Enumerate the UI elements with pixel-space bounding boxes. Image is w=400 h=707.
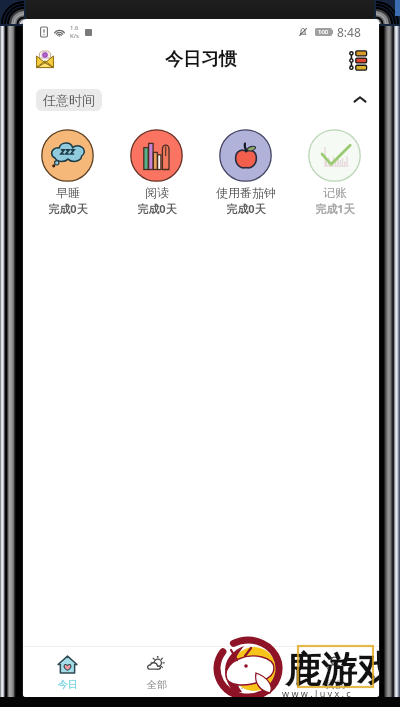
staticText: 番茄钟	[231, 678, 261, 691]
staticText: 今日	[58, 678, 78, 691]
staticText: 8:48	[337, 24, 361, 40]
button[interactable]: 使用番茄钟	[201, 129, 290, 216]
button[interactable]: 我的	[290, 647, 379, 697]
staticText: 100	[318, 28, 329, 36]
staticText: 完成1天	[315, 201, 355, 216]
staticText: 早睡	[56, 185, 80, 200]
staticText: 使用番茄钟	[216, 185, 276, 200]
staticText: 鹿游戏	[285, 647, 379, 692]
staticText: 1.6	[70, 24, 79, 32]
staticText: 完成0天	[226, 201, 266, 216]
staticText: 我的	[325, 678, 345, 691]
staticText: w w w . l u y x . c	[282, 687, 351, 697]
button[interactable]: Messages	[29, 44, 61, 76]
button[interactable]: 记账	[290, 129, 379, 216]
button[interactable]: 全部	[112, 647, 201, 697]
button[interactable]: Filter	[341, 44, 373, 76]
button[interactable]: 阅读	[112, 129, 201, 216]
staticText: 完成0天	[137, 201, 177, 216]
staticText: 任意时间	[43, 92, 95, 108]
staticText: K/s	[70, 32, 79, 40]
staticText: 全部	[147, 678, 167, 691]
button[interactable]: 今日	[23, 647, 112, 697]
staticText: 记账	[323, 185, 347, 200]
button[interactable]: 番茄钟	[201, 647, 290, 697]
staticText: 完成0天	[48, 201, 88, 216]
button[interactable]: 任意时间	[23, 76, 379, 123]
staticText: 今日习惯	[165, 48, 237, 71]
staticText: 阅读	[145, 185, 169, 200]
button[interactable]: 早睡	[23, 129, 112, 216]
